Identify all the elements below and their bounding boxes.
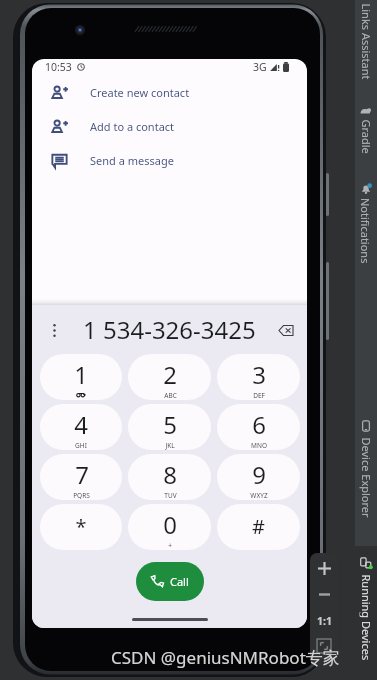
button[interactable]	[355, 557, 377, 673]
staticText: GHI	[75, 441, 87, 450]
button[interactable]: 6	[217, 404, 300, 450]
button[interactable]: 0	[128, 504, 211, 550]
staticText: 0	[163, 508, 177, 541]
button[interactable]: Zoom out	[310, 582, 338, 607]
staticText: Send a message	[90, 153, 174, 168]
staticText: JKL	[165, 441, 175, 450]
staticText: Add to a contact	[90, 119, 175, 134]
button[interactable]: Create new contact	[32, 75, 307, 109]
staticText: DEF	[253, 391, 265, 400]
button[interactable]	[355, 4, 377, 102]
staticText: 3	[252, 358, 266, 391]
staticText: 3G	[253, 60, 267, 74]
staticText: 4	[74, 408, 88, 441]
staticText: 1 534-326-3425	[83, 313, 256, 346]
staticText: 1:1	[317, 614, 332, 628]
staticText: 2	[163, 358, 177, 391]
button[interactable]: More options	[44, 320, 64, 340]
button[interactable]	[355, 183, 377, 284]
staticText: Device Explorer	[359, 437, 373, 518]
staticText: Gradle	[359, 119, 373, 154]
staticText: Links Assistant	[359, 3, 373, 79]
staticText: +	[168, 541, 172, 550]
staticText: Running Devices	[359, 574, 373, 660]
button[interactable]: 2	[128, 354, 211, 400]
button[interactable]: 3	[217, 354, 300, 400]
button[interactable]: 7	[40, 454, 122, 500]
staticText: Call	[170, 574, 189, 589]
staticText: CSDN @geniusNMRobot专家	[111, 646, 340, 669]
staticText: #	[252, 513, 265, 540]
button[interactable]: 4	[40, 404, 122, 450]
button[interactable]: Zoom in	[310, 556, 338, 581]
staticText: MNO	[251, 441, 267, 450]
button[interactable]: Backspace	[275, 319, 297, 341]
staticText: *	[75, 513, 87, 540]
button[interactable]: *	[40, 504, 122, 550]
button[interactable]: Actual size	[310, 608, 338, 633]
button[interactable]	[355, 420, 377, 536]
button[interactable]: 9	[217, 454, 300, 500]
staticText: 6	[252, 408, 266, 441]
staticText: ABC	[164, 391, 177, 400]
button[interactable]: 8	[128, 454, 211, 500]
staticText: 8	[163, 458, 177, 491]
staticText: WXYZ	[250, 491, 268, 500]
button[interactable]: Send a message	[32, 143, 307, 177]
staticText: 7	[75, 458, 89, 491]
staticText: Create new contact	[90, 85, 190, 100]
staticText: 10:53	[45, 60, 72, 74]
button[interactable]: 1	[40, 354, 122, 400]
staticText: TUV	[164, 491, 177, 500]
button[interactable]: Fit to screen	[310, 633, 338, 658]
button[interactable]: Call	[136, 562, 204, 601]
staticText: 5	[163, 408, 177, 441]
staticText: Notifications	[359, 198, 373, 264]
staticText: PQRS	[73, 491, 90, 500]
button[interactable]: 5	[128, 404, 211, 450]
staticText: 9	[252, 458, 266, 491]
staticText: 1	[74, 358, 88, 391]
button[interactable]: #	[217, 504, 300, 550]
button[interactable]	[355, 105, 377, 164]
button[interactable]: Add to a contact	[32, 109, 307, 143]
